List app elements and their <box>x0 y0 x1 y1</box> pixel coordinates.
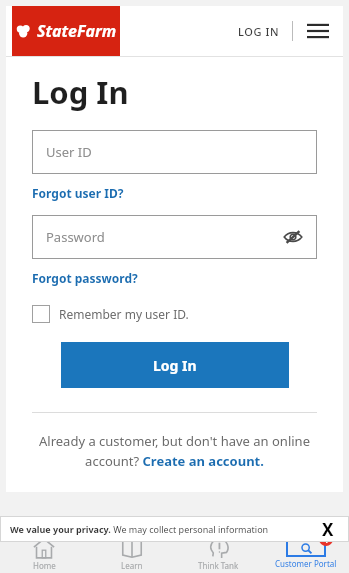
button[interactable]: Menu <box>303 16 333 46</box>
button[interactable]: Show password <box>281 225 305 249</box>
staticText: Log In <box>153 356 197 375</box>
staticText: LOG IN <box>238 24 280 39</box>
staticText: Forgot user ID? <box>32 185 124 201</box>
button[interactable]: Think Tank <box>175 534 262 573</box>
button[interactable]: Already a customer, but don't have an on… <box>32 432 317 470</box>
button[interactable]: Remember my user ID. <box>32 302 189 326</box>
button[interactable]: Log In <box>61 342 289 388</box>
staticText: Home <box>33 560 56 571</box>
staticText: Think Tank <box>198 560 239 571</box>
staticText: Remember my user ID. <box>59 306 189 322</box>
staticText: Forgot password? <box>32 270 138 286</box>
button[interactable]: Forgot password? <box>32 268 138 288</box>
staticText: User ID <box>46 143 92 161</box>
button[interactable]: User ID <box>32 130 317 174</box>
button[interactable]: Learn <box>88 534 175 573</box>
staticText: X <box>322 518 334 540</box>
button[interactable]: Home <box>0 534 88 573</box>
staticText: Password <box>46 228 105 246</box>
button[interactable]: LOG IN <box>234 18 284 45</box>
button[interactable]: Forgot user ID? <box>32 183 124 203</box>
staticText: StateFarm <box>37 20 117 42</box>
button[interactable]: Close <box>317 518 339 540</box>
button[interactable]: Password <box>32 215 317 259</box>
staticText: Customer Portal <box>275 558 337 569</box>
staticText: Learn <box>121 560 143 571</box>
staticText: Log In <box>32 71 129 113</box>
button[interactable]: State Farm home <box>12 6 120 56</box>
staticText: 1 <box>324 534 329 545</box>
staticText: We value your privacy. We may collect pe… <box>10 523 269 535</box>
button[interactable]: 1 <box>262 534 349 573</box>
